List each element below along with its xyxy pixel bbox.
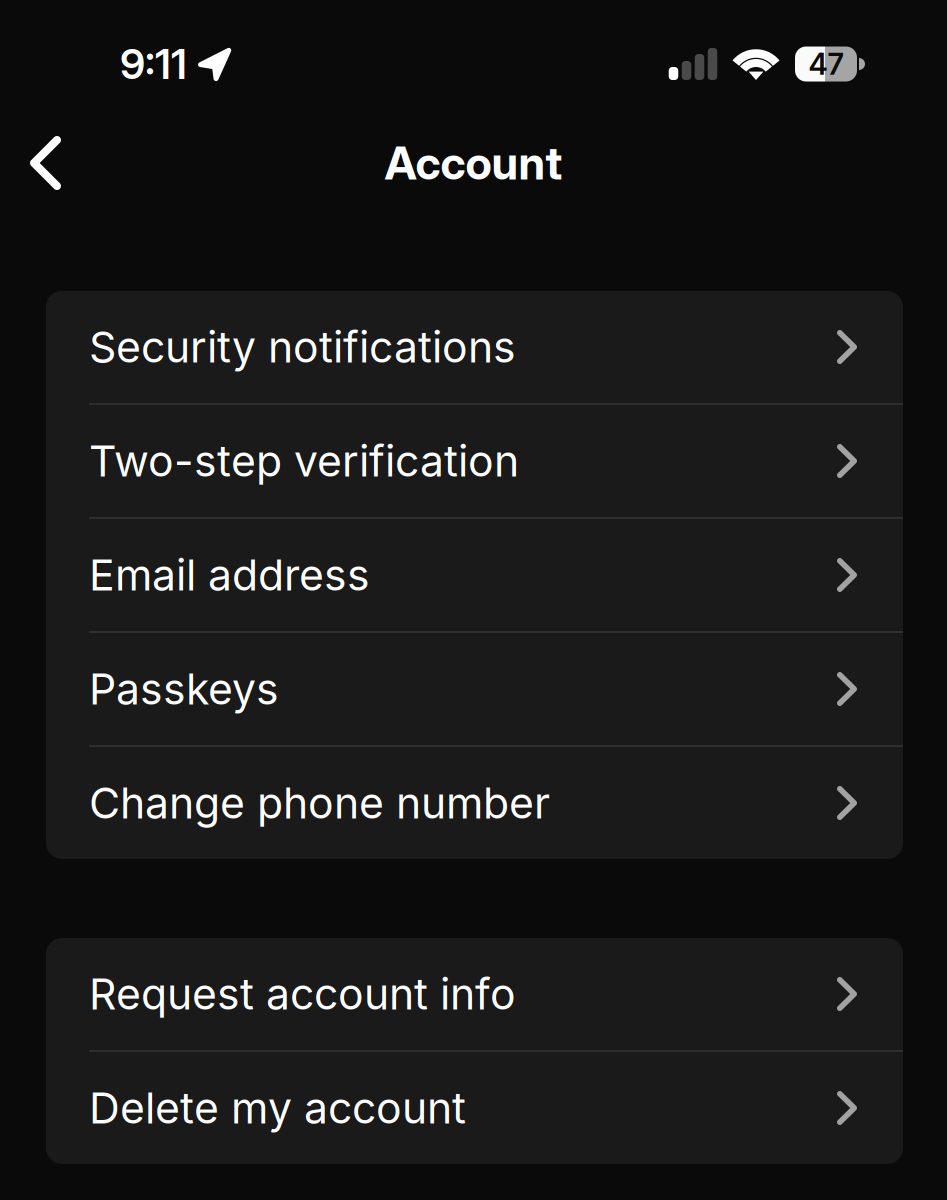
- button[interactable]: Email address: [46, 519, 903, 631]
- staticText: Account: [384, 136, 562, 190]
- staticText: 9:11: [120, 39, 187, 89]
- staticText: Request account info: [89, 968, 516, 1020]
- staticText: Security notifications: [89, 321, 516, 373]
- button[interactable]: Security notifications: [46, 291, 903, 403]
- staticText: Email address: [89, 549, 370, 601]
- button[interactable]: Request account info: [46, 938, 903, 1050]
- staticText: 47: [808, 46, 843, 82]
- staticText: Two-step verification: [89, 435, 519, 487]
- button[interactable]: Back: [0, 128, 81, 198]
- button[interactable]: Passkeys: [46, 633, 903, 745]
- button[interactable]: Change phone number: [46, 747, 903, 859]
- staticText: Passkeys: [89, 663, 279, 715]
- button[interactable]: Delete my account: [46, 1052, 903, 1164]
- staticText: Change phone number: [89, 777, 550, 829]
- button[interactable]: Two-step verification: [46, 405, 903, 517]
- staticText: Delete my account: [89, 1082, 466, 1134]
